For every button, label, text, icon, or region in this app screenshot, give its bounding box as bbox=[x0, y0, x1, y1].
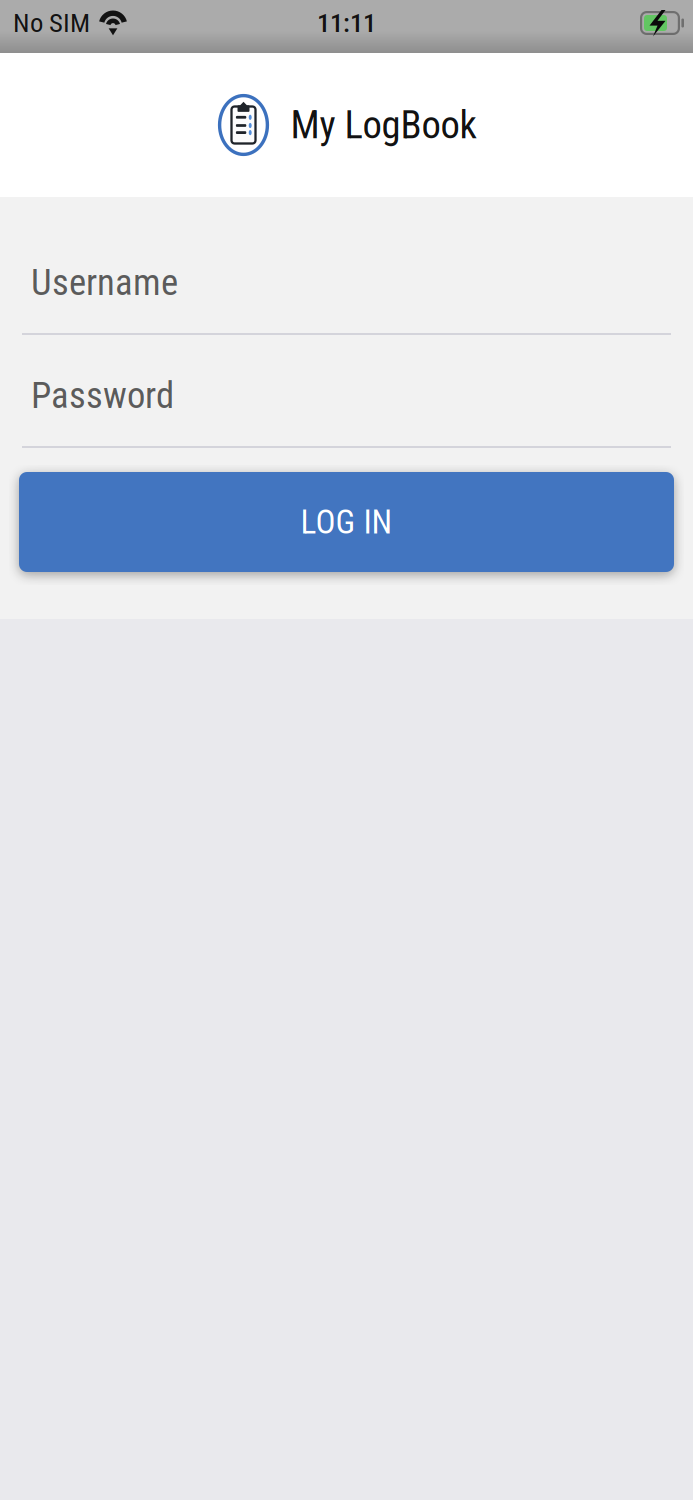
staticText: Password bbox=[31, 374, 174, 417]
staticText: 11:11 bbox=[317, 7, 376, 39]
staticText: LOG IN bbox=[300, 502, 392, 542]
button[interactable]: LOG IN bbox=[0, 472, 693, 572]
staticText: Username bbox=[31, 261, 178, 304]
button[interactable]: Password bbox=[0, 380, 693, 448]
staticText: No SIM bbox=[13, 7, 90, 39]
button[interactable]: Username bbox=[0, 267, 693, 335]
staticText: My LogBook bbox=[290, 102, 476, 148]
